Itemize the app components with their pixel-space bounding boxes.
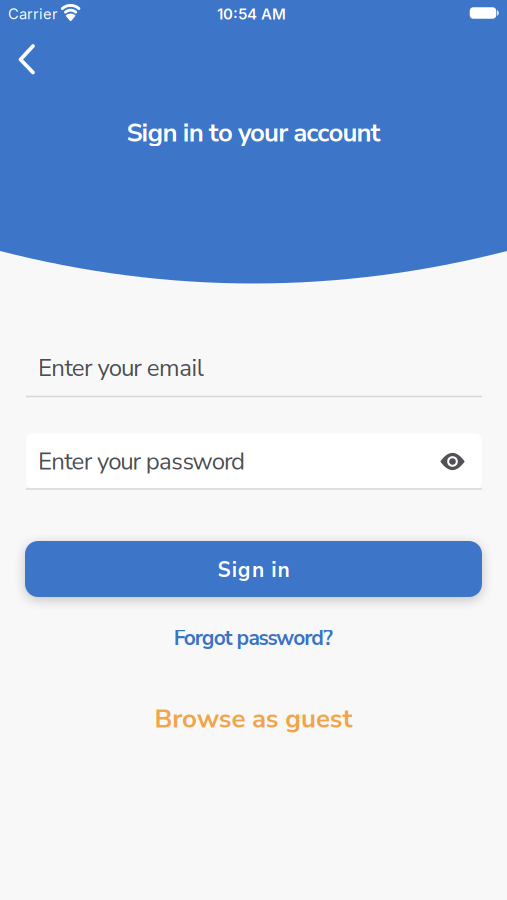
staticText: n [277,556,289,584]
staticText: Carrier [8,5,58,23]
staticText: n [252,556,264,584]
staticText: Enter your password [38,445,245,478]
staticText: i [271,556,276,584]
staticText: g [238,556,251,584]
staticText: Forgot password? [174,624,333,652]
staticText: Sign in to your account [126,115,381,151]
staticText: S [218,556,231,584]
staticText: Browse as guest [154,701,352,737]
staticText: i [232,556,237,584]
staticText: 10:54 AM [217,5,286,23]
staticText: Enter your email [38,352,204,384]
